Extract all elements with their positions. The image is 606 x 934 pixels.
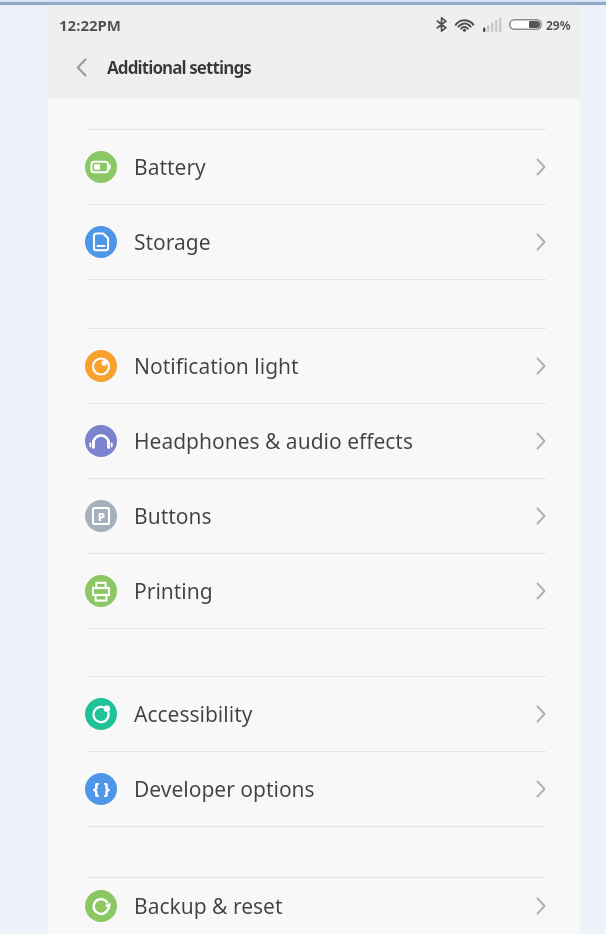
staticText: Developer options [134, 775, 315, 804]
staticText: 29% [546, 17, 571, 33]
staticText: Battery [134, 153, 206, 182]
button[interactable]: Storage [48, 205, 580, 279]
staticText: Storage [134, 228, 211, 257]
button[interactable]: Backup & reset [48, 878, 580, 934]
button[interactable]: Headphones & audio effects [48, 404, 580, 478]
staticText: Accessibility [134, 700, 253, 729]
button[interactable]: Printing [48, 554, 580, 628]
button[interactable]: Accessibility [48, 677, 580, 751]
staticText: Backup & reset [134, 892, 283, 921]
button[interactable]: Battery [48, 130, 580, 204]
staticText: Notification light [134, 352, 299, 381]
staticText: P [98, 509, 105, 524]
button[interactable]: { } [48, 752, 580, 826]
button[interactable]: Additional settings [48, 44, 580, 90]
staticText: Headphones & audio effects [134, 427, 413, 456]
staticText: Buttons [134, 502, 212, 531]
staticText: Printing [134, 577, 213, 606]
staticText: Additional settings [107, 56, 251, 79]
button[interactable]: Notification light [48, 329, 580, 403]
staticText: 12:22PM [59, 15, 121, 35]
staticText: { } [93, 778, 110, 800]
button[interactable]: P [48, 479, 580, 553]
